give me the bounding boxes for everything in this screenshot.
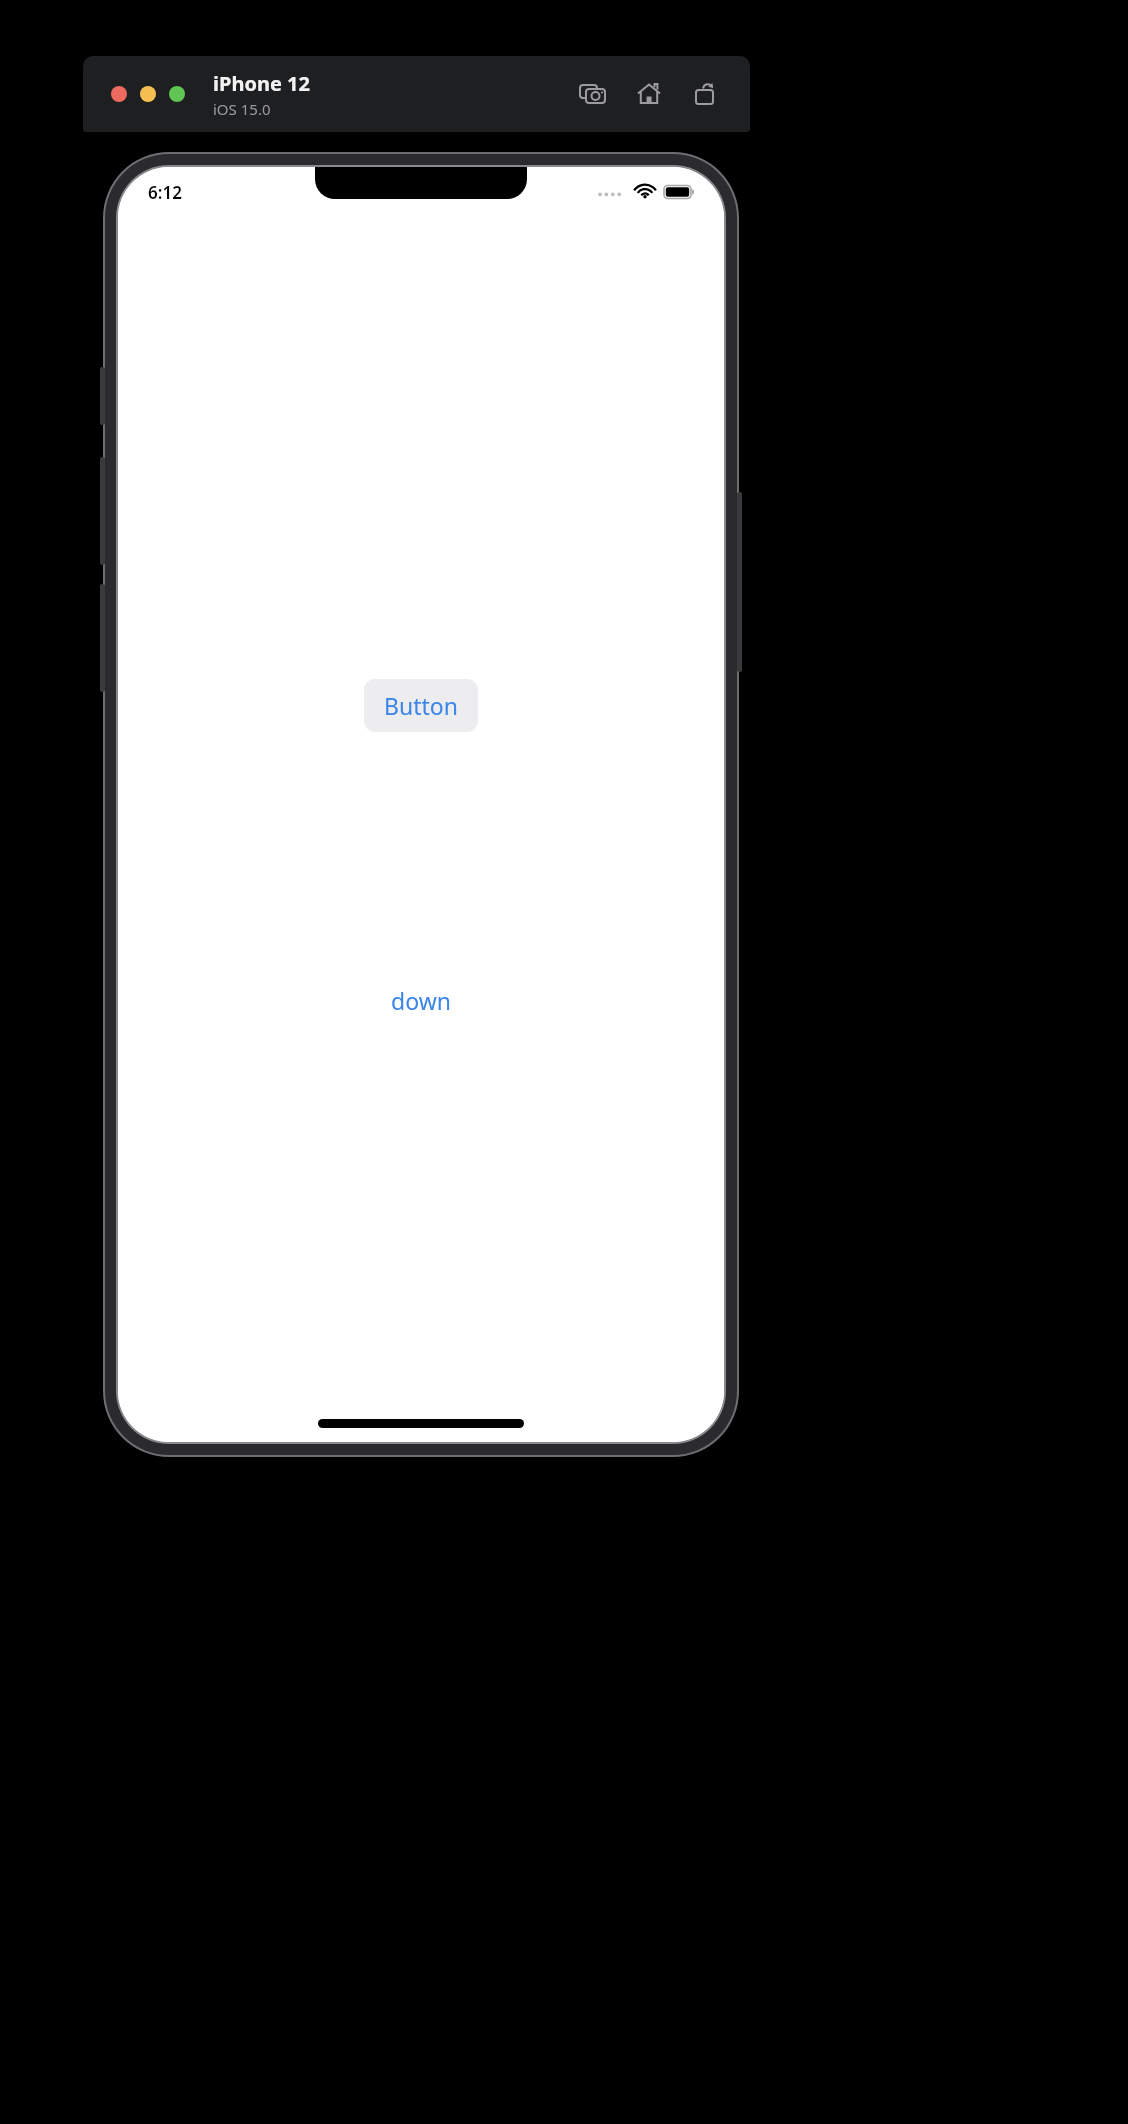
button[interactable]: Button <box>364 679 478 732</box>
staticText: Button <box>384 690 458 721</box>
button[interactable]: Zoom <box>169 86 185 102</box>
staticText: iPhone 12 <box>213 70 310 97</box>
button[interactable]: Close <box>111 86 127 102</box>
staticText: 6:12 <box>148 181 182 204</box>
staticText: down <box>391 985 451 1016</box>
button[interactable]: Rotate <box>688 77 722 111</box>
button[interactable]: down <box>381 979 461 1022</box>
button[interactable]: Home <box>632 77 666 111</box>
button[interactable]: Minimize <box>140 86 156 102</box>
button[interactable]: Screenshot <box>576 77 610 111</box>
staticText: iOS 15.0 <box>213 99 271 119</box>
